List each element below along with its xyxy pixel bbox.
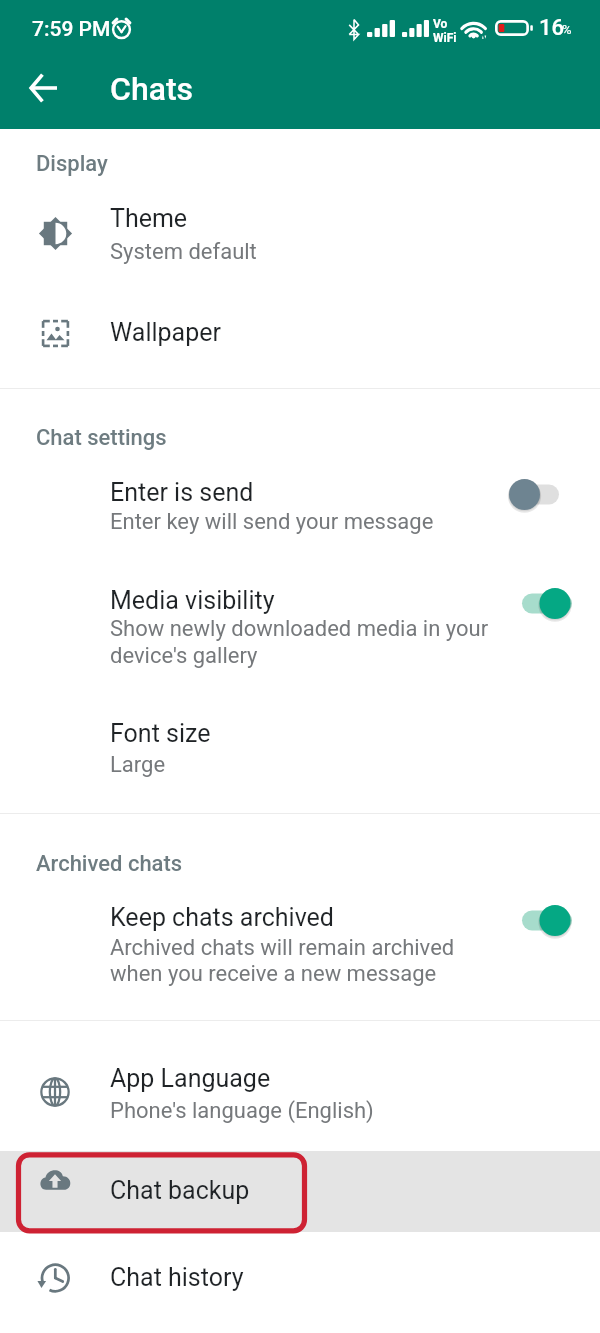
staticText: Chat settings: [36, 424, 167, 450]
staticText: Vo: [433, 17, 448, 31]
staticText: Font size: [110, 711, 211, 750]
staticText: Chat backup: [110, 1168, 250, 1207]
button[interactable]: [0, 702, 600, 795]
staticText: %: [562, 22, 572, 37]
staticText: Keep chats archived: [110, 895, 334, 934]
button[interactable]: [0, 1242, 600, 1318]
button[interactable]: [0, 186, 600, 285]
staticText: Large: [110, 751, 166, 778]
button[interactable]: [0, 292, 600, 373]
staticText: Media visibility: [110, 578, 275, 617]
staticText: device's gallery: [110, 642, 258, 669]
staticText: WiFi: [433, 31, 457, 45]
staticText: System default: [110, 238, 257, 265]
button[interactable]: Back: [6, 56, 80, 129]
button[interactable]: Chat backup: [0, 1151, 600, 1232]
staticText: Wallpaper: [110, 310, 221, 349]
button[interactable]: [0, 568, 600, 688]
staticText: Chat history: [110, 1255, 244, 1294]
button[interactable]: [0, 1046, 600, 1145]
staticText: Display: [36, 150, 108, 176]
button[interactable]: [0, 462, 600, 552]
staticText: Phone's language (English): [110, 1097, 374, 1124]
staticText: Archived chats will remain archived: [110, 934, 455, 961]
button[interactable]: [0, 885, 600, 1005]
staticText: when you receive a new message: [110, 960, 437, 987]
staticText: Chats: [110, 70, 194, 108]
staticText: 16: [539, 14, 565, 40]
staticText: App Language: [110, 1056, 271, 1095]
staticText: Enter is send: [110, 470, 254, 509]
staticText: Show newly downloaded media in your: [110, 615, 489, 642]
staticText: Archived chats: [36, 850, 183, 876]
button[interactable]: Toggle on: [505, 905, 571, 936]
staticText: 7:59 PM: [32, 15, 111, 41]
button[interactable]: Toggle off: [505, 479, 571, 510]
button[interactable]: Toggle on: [505, 588, 571, 619]
staticText: Theme: [110, 196, 188, 235]
staticText: Enter key will send your message: [110, 508, 434, 535]
